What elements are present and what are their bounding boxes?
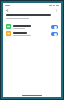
button[interactable]: Card payments [51, 32, 58, 36]
button[interactable]: More options [54, 8, 59, 13]
button[interactable]: Card payments [3, 30, 61, 37]
button[interactable]: Cash payments [51, 25, 58, 29]
button[interactable]: Cash payments [3, 23, 61, 30]
button[interactable]: Back [5, 8, 10, 13]
